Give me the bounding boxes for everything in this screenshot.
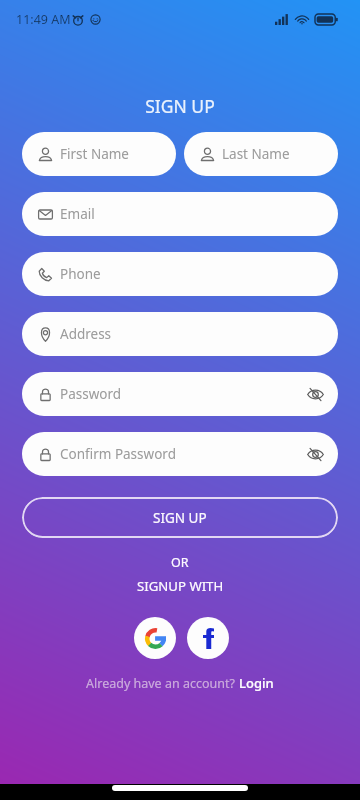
button[interactable]: Sign up with Google (134, 617, 176, 659)
button[interactable]: Confirm Password (22, 432, 338, 476)
button[interactable]: Last Name (184, 132, 338, 176)
staticText: Already have an account? (86, 675, 239, 692)
staticText: OR (171, 554, 189, 571)
button[interactable]: Email (22, 192, 338, 236)
staticText: Confirm Password (60, 445, 176, 463)
staticText: SIGN UP (145, 94, 215, 118)
staticText: SIGN UP (153, 509, 207, 527)
staticText: Phone (60, 265, 101, 283)
button[interactable]: Address (22, 312, 338, 356)
button[interactable]: Show password (307, 386, 324, 403)
staticText: Password (60, 385, 122, 403)
staticText: 11:49 AM (16, 11, 71, 28)
staticText: Last Name (222, 145, 290, 163)
staticText: First Name (60, 145, 129, 163)
button[interactable]: First Name (22, 132, 176, 176)
button[interactable]: Password (22, 372, 338, 416)
button[interactable]: Show password (307, 446, 324, 463)
button[interactable]: Already have an account? (86, 674, 274, 692)
button[interactable]: SIGN UP (22, 497, 338, 538)
staticText: Login (239, 674, 274, 692)
button[interactable]: Sign up with Facebook (187, 617, 229, 659)
staticText: Address (60, 325, 112, 343)
button[interactable]: Phone (22, 252, 338, 296)
staticText: SIGNUP WITH (137, 577, 224, 595)
staticText: Email (60, 205, 95, 223)
